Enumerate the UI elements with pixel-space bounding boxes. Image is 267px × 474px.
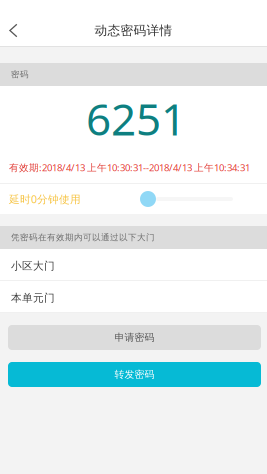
button[interactable]: 小区大门 — [0, 249, 267, 281]
staticText: 6251 — [86, 88, 186, 148]
button[interactable]: 转发密码 — [8, 362, 261, 387]
staticText: 延时0分钟使用 — [9, 192, 81, 206]
button[interactable]: Back — [0, 15, 27, 46]
staticText: 转发密码 — [114, 368, 154, 381]
staticText: 有效期:2018/4/13 上午10:30:31--2018/4/13 上午10… — [9, 161, 250, 174]
staticText: 本单元门 — [11, 291, 55, 305]
button[interactable]: 申请密码 — [8, 325, 261, 350]
staticText: 小区大门 — [11, 259, 55, 273]
staticText: 密码 — [11, 69, 29, 80]
staticText: 凭密码在有效期内可以通过以下大门 — [11, 232, 155, 243]
staticText: 申请密码 — [114, 331, 154, 344]
staticText: 动态密码详情 — [94, 22, 172, 38]
button[interactable]: 本单元门 — [0, 281, 267, 313]
